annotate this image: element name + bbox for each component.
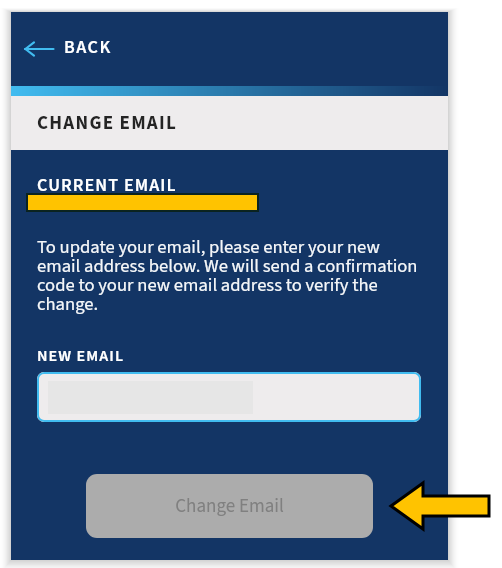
staticText: Change Email: [175, 493, 284, 520]
other: Back: [24, 41, 54, 57]
button[interactable]: [37, 372, 421, 422]
staticText: BACK: [64, 35, 112, 61]
staticText: CHANGE EMAIL: [37, 110, 178, 137]
staticText: To update your email, please enter your …: [37, 234, 437, 317]
staticText: CURRENT EMAIL: [37, 173, 177, 199]
button[interactable]: Back: [11, 12, 448, 86]
staticText: NEW EMAIL: [37, 345, 125, 368]
button[interactable]: Change Email: [86, 474, 373, 538]
